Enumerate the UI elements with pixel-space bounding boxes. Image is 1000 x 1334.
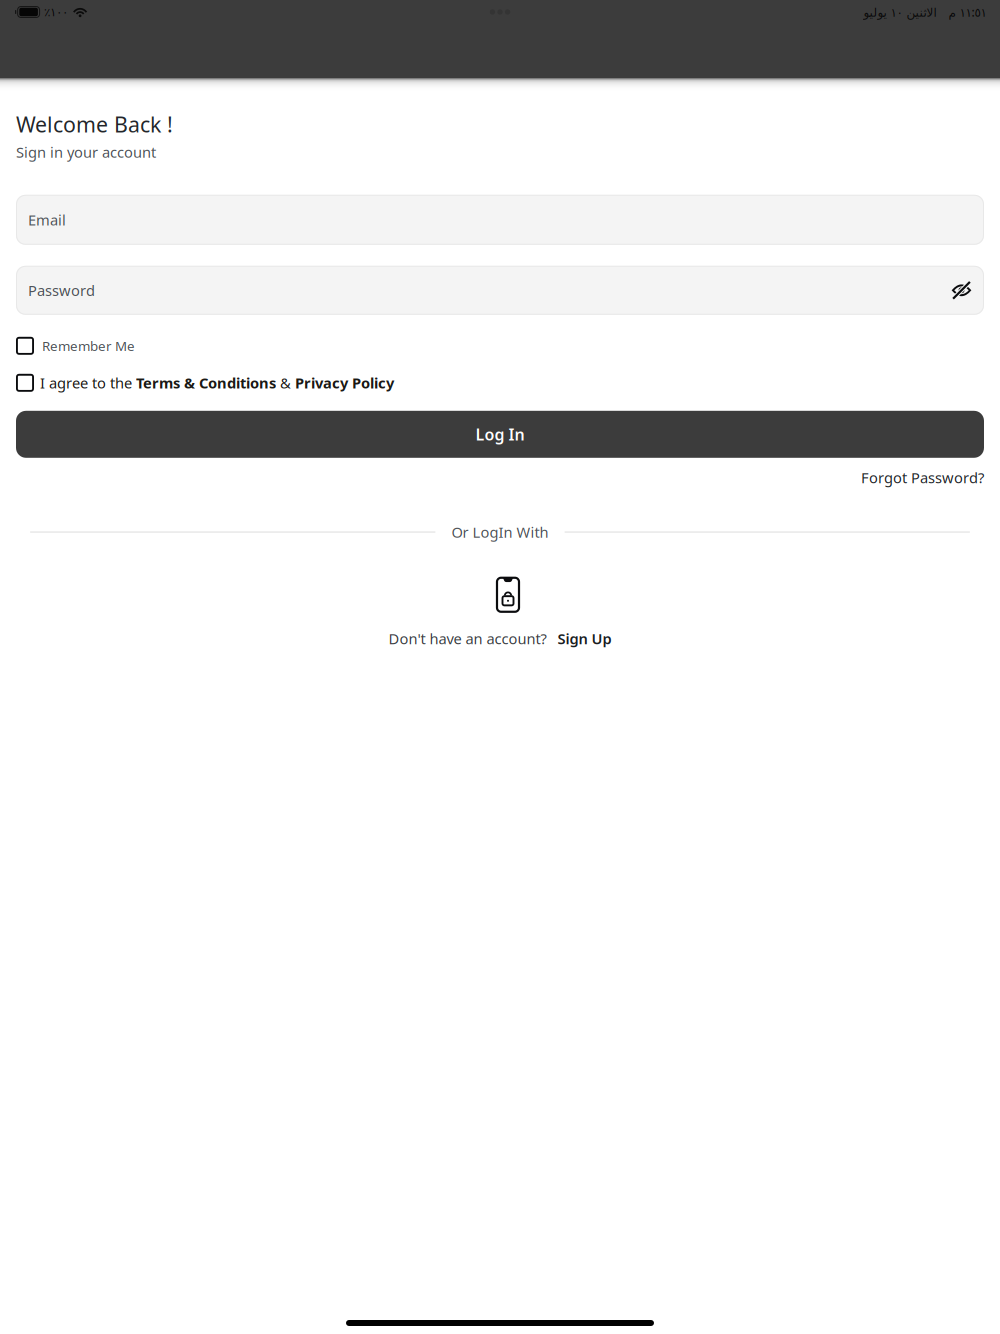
staticText: Password <box>28 281 95 300</box>
staticText: Don't have an account? <box>388 629 546 648</box>
button[interactable]: Forgot Password? <box>16 468 984 487</box>
staticText: Sign Up <box>557 629 611 648</box>
staticText: ٪١٠٠ <box>44 5 68 19</box>
button[interactable]: Sign Up <box>557 629 611 648</box>
staticText: Log In <box>475 424 524 445</box>
button[interactable]: Password <box>16 266 984 315</box>
staticText: I agree to the Terms & Conditions & Priv… <box>40 373 394 393</box>
staticText: ١١:٥١ م الاثنين ١٠ يوليو <box>863 4 986 20</box>
staticText: Or LogIn With <box>451 522 548 542</box>
staticText: Email <box>28 210 66 230</box>
staticText: Forgot Password? <box>861 468 984 487</box>
button[interactable]: I agree to the Terms & Conditions & Priv… <box>16 374 984 392</box>
button[interactable]: Log In <box>16 411 984 458</box>
button[interactable]: Remember Me <box>16 337 984 355</box>
button[interactable]: Sign in with device passcode <box>496 577 520 613</box>
button[interactable]: Email <box>16 195 984 245</box>
staticText: Remember Me <box>42 337 135 355</box>
staticText: Sign in your account <box>16 142 156 162</box>
staticText: Welcome Back ! <box>16 110 173 138</box>
